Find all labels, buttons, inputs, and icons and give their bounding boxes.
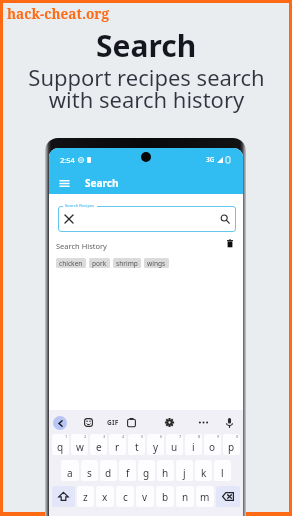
staticText: f	[126, 466, 130, 480]
staticText: u	[171, 440, 178, 454]
button[interactable]: pork	[89, 258, 110, 268]
button[interactable]: Emoji	[81, 416, 95, 429]
button[interactable]: a	[61, 460, 79, 481]
staticText: y	[153, 440, 159, 454]
staticText: 3	[103, 434, 106, 439]
staticText: 3G	[206, 155, 215, 164]
button[interactable]: j	[176, 460, 193, 481]
staticText: wings	[147, 259, 166, 268]
button[interactable]: 2	[71, 434, 88, 455]
button[interactable]: h	[157, 460, 174, 481]
button[interactable]: z	[77, 486, 94, 507]
button[interactable]: 9	[204, 434, 221, 455]
button[interactable]: 1	[52, 434, 69, 455]
button[interactable]: l	[214, 460, 231, 481]
staticText: k	[201, 466, 207, 480]
staticText: v	[142, 490, 148, 504]
staticText: q	[57, 440, 64, 454]
button[interactable]: c	[116, 486, 134, 507]
staticText: shrimp	[116, 259, 138, 268]
staticText: 2	[84, 434, 87, 439]
staticText: b	[162, 490, 169, 504]
button[interactable]: 3	[90, 434, 107, 455]
staticText: 1	[65, 434, 68, 439]
staticText: pork	[92, 259, 107, 268]
staticText: o	[209, 440, 216, 454]
staticText: j	[183, 466, 186, 480]
staticText: 2:54	[60, 155, 75, 165]
staticText: s	[87, 466, 92, 480]
button[interactable]: x	[96, 486, 114, 507]
button[interactable]: Backspace	[216, 486, 240, 507]
staticText: 9	[217, 434, 220, 439]
button[interactable]: chicken	[56, 258, 86, 268]
button[interactable]: g	[138, 460, 155, 481]
button[interactable]: More options	[196, 416, 210, 429]
staticText: Support recipes search with search histo…	[28, 62, 265, 114]
button[interactable]: 5	[128, 434, 145, 455]
staticText: 5	[141, 434, 144, 439]
staticText: a	[67, 466, 73, 480]
staticText: w	[76, 440, 84, 454]
staticText: x	[102, 490, 108, 504]
staticText: n	[182, 490, 189, 504]
button[interactable]: GIF	[103, 416, 123, 429]
button[interactable]: 8	[185, 434, 202, 455]
button[interactable]: n	[176, 486, 194, 507]
button[interactable]: Search	[219, 213, 231, 225]
button[interactable]: d	[100, 460, 117, 481]
button[interactable]: Clear text	[63, 213, 75, 225]
button[interactable]: 4	[109, 434, 126, 455]
button[interactable]: Delete search history	[223, 237, 236, 250]
button[interactable]: 7	[166, 434, 183, 455]
button[interactable]: shrimp	[113, 258, 141, 268]
staticText: z	[83, 490, 88, 504]
staticText: 6	[160, 434, 163, 439]
staticText: GIF	[107, 418, 119, 427]
staticText: chicken	[59, 259, 83, 268]
staticText: e	[96, 440, 102, 454]
staticText: m	[200, 490, 210, 504]
button[interactable]: 6	[147, 434, 164, 455]
staticText: r	[115, 440, 120, 454]
staticText: c	[123, 490, 128, 504]
staticText: 7	[179, 434, 182, 439]
staticText: i	[192, 440, 195, 454]
staticText: 0	[236, 434, 239, 439]
staticText: t	[135, 440, 139, 454]
button[interactable]: 0	[223, 434, 240, 455]
button[interactable]: Voice input	[222, 416, 236, 429]
button[interactable]: b	[156, 486, 174, 507]
staticText: 4	[122, 434, 125, 439]
staticText: g	[143, 466, 150, 480]
staticText: hack-cheat.org	[7, 4, 109, 23]
staticText: h	[162, 466, 169, 480]
staticText: p	[228, 440, 235, 454]
button[interactable]: Clipboard	[124, 416, 138, 429]
button[interactable]: v	[136, 486, 154, 507]
button[interactable]: k	[195, 460, 212, 481]
button[interactable]: s	[81, 460, 98, 481]
staticText: d	[105, 466, 112, 480]
staticText: Search	[85, 176, 119, 190]
button[interactable]: Back	[53, 416, 67, 430]
button[interactable]: wings	[144, 258, 169, 268]
staticText: l	[221, 466, 224, 480]
staticText: 8	[198, 434, 201, 439]
staticText: Search History	[56, 241, 107, 251]
button[interactable]: Menu	[56, 175, 72, 191]
staticText: Search Recipes	[65, 203, 95, 209]
button[interactable]: f	[119, 460, 136, 481]
staticText: Search	[96, 25, 197, 66]
button[interactable]: m	[196, 486, 214, 507]
button[interactable]: Settings	[162, 416, 176, 429]
button[interactable]: Shift	[52, 486, 75, 507]
